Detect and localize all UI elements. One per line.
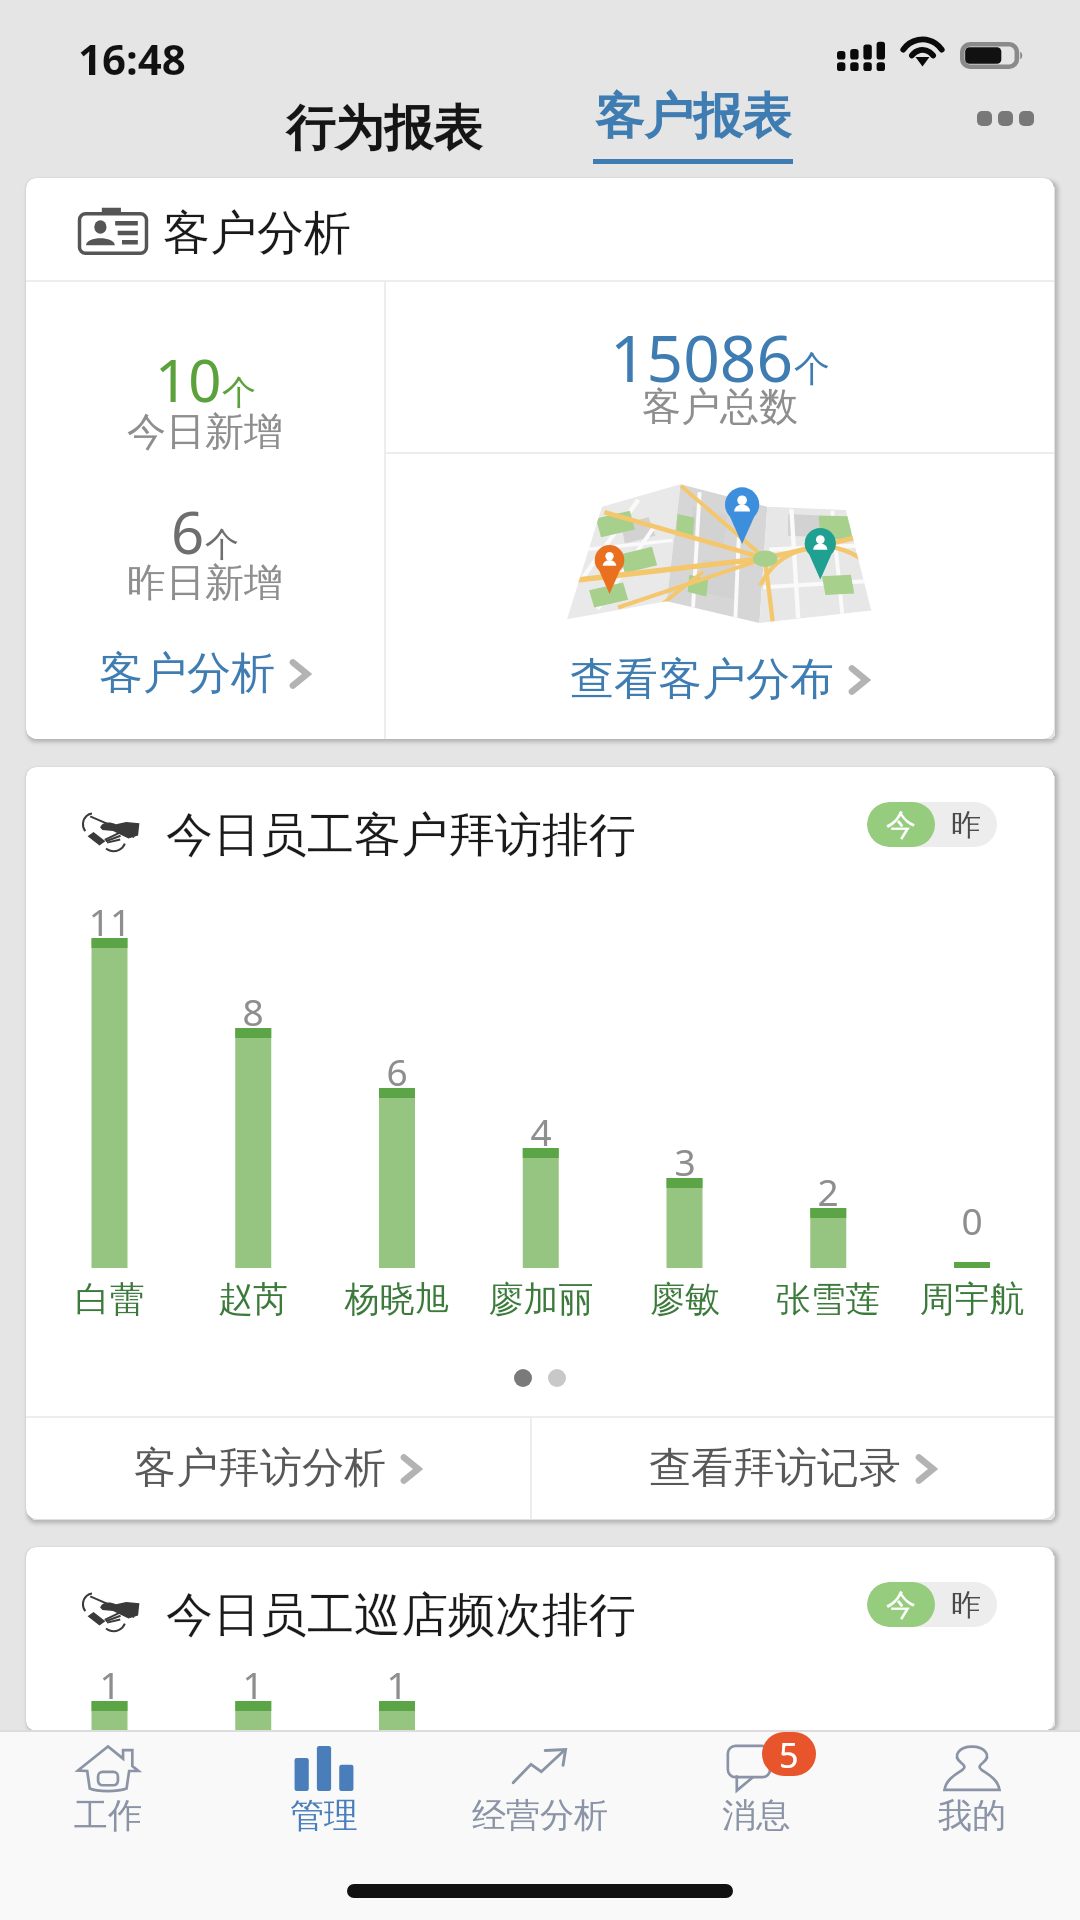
- staticText: 客户总数: [642, 382, 798, 431]
- staticText: 5: [779, 1732, 799, 1776]
- staticText: 客户拜访分析: [134, 1442, 386, 1495]
- staticText: 1: [213, 1659, 293, 1709]
- staticText: 查看客户分布: [570, 652, 834, 707]
- button[interactable]: 今: [867, 802, 997, 847]
- staticText: 16:48: [78, 30, 186, 87]
- staticText: 3: [645, 1136, 725, 1186]
- staticText: 杨晓旭: [307, 1277, 487, 1321]
- staticText: 0: [932, 1195, 1012, 1245]
- staticText: 经营分析: [472, 1794, 608, 1837]
- staticText: 工作: [74, 1794, 142, 1837]
- staticText: 个: [205, 523, 239, 566]
- button[interactable]: 查看客户分布: [558, 644, 882, 715]
- button[interactable]: 工作: [0, 1730, 216, 1858]
- staticText: 4: [501, 1106, 581, 1156]
- staticText: 今日新增: [127, 407, 283, 456]
- staticText: 查看拜访记录: [649, 1442, 901, 1495]
- staticText: 1: [70, 1659, 150, 1709]
- staticText: 廖敏: [595, 1277, 775, 1321]
- button[interactable]: 今: [867, 1582, 997, 1627]
- staticText: 今日员工巡店频次排行: [166, 1586, 636, 1645]
- staticText: 昨: [951, 1586, 981, 1624]
- button[interactable]: 5: [648, 1730, 864, 1858]
- staticText: 个: [222, 371, 256, 414]
- staticText: 昨: [951, 806, 981, 844]
- staticText: 消息: [722, 1794, 790, 1837]
- staticText: 个: [794, 346, 830, 391]
- staticText: 客户分析: [99, 646, 275, 701]
- staticText: 8: [213, 986, 293, 1036]
- staticText: 1: [357, 1659, 437, 1709]
- staticText: 行为报表: [286, 98, 482, 160]
- button[interactable]: More options: [963, 97, 1048, 140]
- staticText: 昨日新增: [127, 558, 283, 607]
- button[interactable]: 客户拜访分析: [26, 1418, 530, 1519]
- staticText: 今日员工客户拜访排行: [166, 806, 636, 865]
- staticText: 客户分析: [163, 204, 351, 263]
- staticText: 2: [788, 1166, 868, 1216]
- staticText: 今: [886, 1586, 916, 1624]
- button[interactable]: 客户报表: [575, 76, 811, 174]
- staticText: 周宇航: [882, 1277, 1054, 1321]
- staticText: 客户报表: [595, 86, 791, 148]
- staticText: 6: [171, 492, 205, 571]
- button[interactable]: 经营分析: [432, 1730, 648, 1858]
- staticText: 11: [70, 896, 150, 946]
- staticText: 6: [357, 1046, 437, 1096]
- staticText: 10: [155, 340, 222, 419]
- staticText: 今: [886, 806, 916, 844]
- staticText: 张雪莲: [738, 1277, 918, 1321]
- staticText: 我的: [938, 1794, 1006, 1837]
- button[interactable]: 管理: [216, 1730, 432, 1858]
- button[interactable]: 客户分析: [87, 638, 323, 709]
- staticText: 管理: [290, 1794, 358, 1837]
- staticText: 15086: [610, 314, 794, 396]
- staticText: 廖加丽: [451, 1277, 631, 1321]
- staticText: 赵芮: [163, 1277, 343, 1321]
- button[interactable]: 我的: [864, 1730, 1080, 1858]
- staticText: 白蕾: [26, 1277, 200, 1321]
- button[interactable]: 查看拜访记录: [532, 1418, 1054, 1519]
- button[interactable]: 行为报表: [268, 88, 500, 170]
